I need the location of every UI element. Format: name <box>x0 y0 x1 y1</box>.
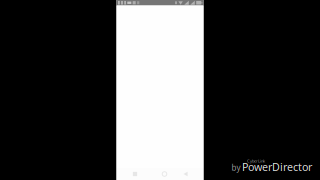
staticText: CyberLink <box>247 158 265 164</box>
button[interactable]: Home <box>153 168 175 180</box>
staticText: PowerDirector <box>242 160 312 174</box>
button[interactable]: Back <box>175 168 195 180</box>
button[interactable]: Recent apps <box>116 168 153 180</box>
staticText: by <box>231 162 240 173</box>
